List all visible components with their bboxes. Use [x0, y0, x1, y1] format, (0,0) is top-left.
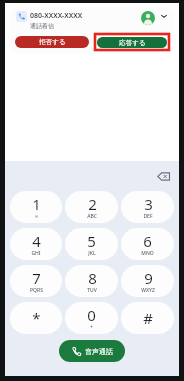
- staticText: 8: [88, 268, 97, 288]
- button[interactable]: 1: [10, 191, 62, 223]
- button[interactable]: 4: [10, 228, 62, 260]
- staticText: 9: [144, 268, 153, 288]
- button[interactable]: 5: [65, 228, 118, 260]
- staticText: 1: [32, 194, 41, 214]
- button[interactable]: Expand: [159, 11, 169, 21]
- staticText: MNO: [141, 250, 154, 257]
- staticText: 音声通話: [85, 347, 113, 356]
- staticText: ABC: [87, 213, 97, 220]
- button[interactable]: Backspace: [155, 168, 171, 184]
- staticText: 7: [32, 268, 41, 288]
- staticText: ∞: [34, 213, 39, 219]
- staticText: WXYZ: [141, 287, 155, 294]
- button[interactable]: 応答する: [97, 37, 167, 48]
- staticText: 4: [32, 231, 41, 251]
- staticText: 6: [143, 231, 152, 251]
- button[interactable]: 2: [65, 191, 118, 223]
- staticText: JKL: [88, 250, 96, 257]
- staticText: GHI: [31, 250, 41, 257]
- staticText: 5: [87, 231, 96, 251]
- button[interactable]: 9: [121, 265, 174, 297]
- button[interactable]: 拒否する: [15, 36, 89, 48]
- button[interactable]: 3: [121, 191, 174, 223]
- button[interactable]: 6: [121, 228, 174, 260]
- staticText: +: [90, 324, 93, 331]
- button[interactable]: 7: [10, 265, 62, 297]
- staticText: DEF: [143, 213, 153, 220]
- button[interactable]: 8: [65, 265, 118, 297]
- staticText: *: [32, 308, 41, 328]
- button[interactable]: 080-XXXX-XXXX: [10, 7, 174, 54]
- staticText: 0: [87, 305, 96, 325]
- staticText: 拒否する: [39, 38, 66, 46]
- button[interactable]: 音声通話: [59, 340, 125, 362]
- button[interactable]: #: [121, 302, 174, 334]
- button[interactable]: 0: [65, 302, 118, 334]
- staticText: 3: [144, 194, 153, 214]
- staticText: 通話着信: [30, 22, 54, 30]
- staticText: 2: [88, 194, 97, 214]
- staticText: 080-XXXX-XXXX: [30, 11, 83, 21]
- staticText: #: [143, 308, 153, 328]
- staticText: TUV: [87, 287, 97, 294]
- staticText: PQRS: [30, 287, 43, 294]
- staticText: 応答する: [119, 39, 146, 47]
- button[interactable]: *: [10, 302, 62, 334]
